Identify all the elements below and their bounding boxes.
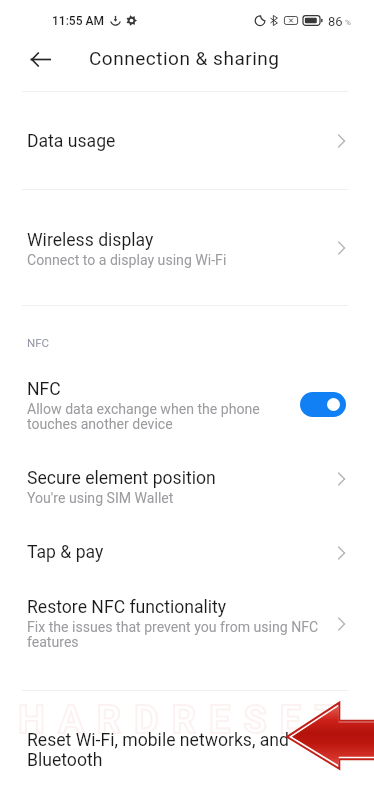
staticText: Allow data exchange when the phone touch…	[27, 402, 260, 432]
staticText: Tap & pay	[27, 542, 327, 562]
staticText: Connection & sharing	[89, 47, 280, 69]
staticText: %	[345, 18, 351, 27]
staticText: Connect to a display using Wi-Fi	[27, 253, 227, 268]
button[interactable]: Back	[20, 39, 60, 79]
button[interactable]: Wireless display	[0, 189, 374, 305]
button[interactable]: NFC	[0, 362, 374, 450]
staticText: 86	[328, 14, 343, 29]
staticText: Data usage	[27, 131, 327, 151]
staticText: NFC	[27, 336, 50, 350]
button[interactable]: Data usage	[0, 91, 374, 189]
staticText: You're using SIM Wallet	[27, 491, 174, 506]
button[interactable]: NFC toggle	[300, 392, 346, 417]
staticText: Wireless display	[27, 230, 154, 250]
staticText: Secure element position	[27, 468, 216, 488]
staticText: 11:55 AM	[52, 14, 104, 28]
button[interactable]: Tap & pay	[0, 526, 374, 578]
staticText: Reset Wi-Fi, mobile networks, and Blueto…	[27, 730, 327, 770]
button[interactable]: Secure element position	[0, 450, 374, 526]
button[interactable]: Reset Wi-Fi, mobile networks, and Blueto…	[0, 690, 374, 800]
staticText: NFC	[27, 379, 61, 399]
staticText: HARDRESET	[18, 698, 351, 743]
button[interactable]: Restore NFC functionality	[0, 578, 374, 672]
staticText: Restore NFC functionality	[27, 597, 227, 617]
staticText: Fix the issues that prevent you from usi…	[27, 620, 319, 650]
